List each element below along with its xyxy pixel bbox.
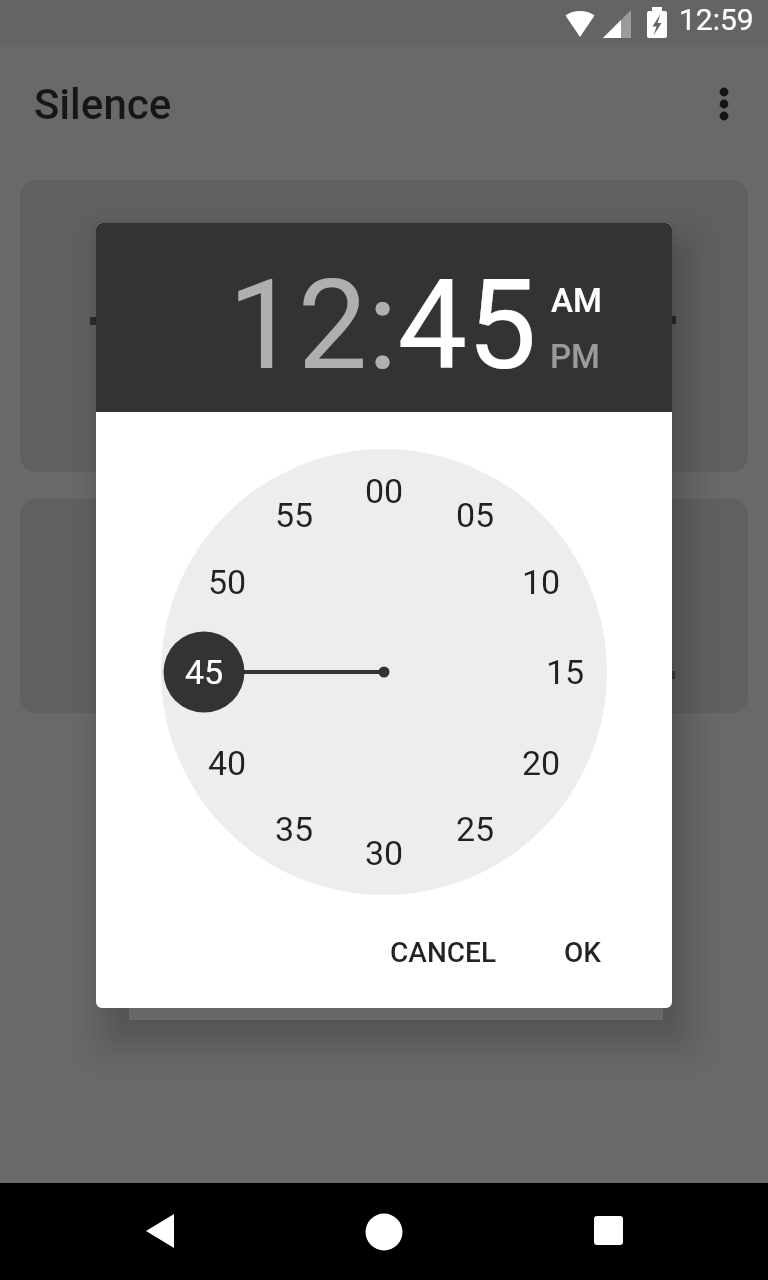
button[interactable] [578,1201,638,1261]
staticText: 12:59 [679,2,754,37]
staticText: 55 [275,495,314,535]
staticText: 00 [365,471,404,511]
button[interactable]: PM [543,331,611,379]
staticText: AM [551,281,602,320]
staticText: 50 [208,562,247,602]
button[interactable]: 05 [435,493,515,537]
staticText: CANCEL [390,936,497,969]
button[interactable]: 10 [501,560,581,604]
button[interactable]: 45 [164,650,244,694]
button[interactable]: 50 [187,560,267,604]
button[interactable] [130,1201,190,1261]
staticText: 20 [522,743,561,783]
staticText: 12:45 [228,253,537,398]
staticText: 45 [185,652,224,692]
button[interactable] [354,1201,414,1261]
staticText: OK [564,936,601,969]
staticText: Silence [34,80,172,129]
staticText: PM [550,337,600,376]
button[interactable]: 30 [344,831,424,875]
button[interactable]: CANCEL [368,916,518,988]
button[interactable]: 40 [187,741,267,785]
button[interactable]: 25 [435,807,515,851]
staticText: 10 [522,562,561,602]
staticText: 40 [208,743,247,783]
button[interactable]: 00 [344,469,424,513]
button[interactable]: AM [543,275,611,323]
staticText: 05 [456,495,495,535]
staticText: 25 [456,809,495,849]
staticText: 35 [275,809,314,849]
button[interactable]: OK [532,916,632,988]
button[interactable]: 15 [525,650,605,694]
button[interactable]: 55 [254,493,334,537]
staticText: 30 [365,833,404,873]
staticText: 15 [546,652,585,692]
button[interactable] [706,80,742,128]
button[interactable]: 35 [254,807,334,851]
button[interactable]: 20 [501,741,581,785]
